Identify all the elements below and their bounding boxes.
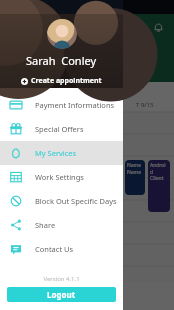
button[interactable]: Work Settings (0, 165, 123, 189)
staticText: S 9/13 (20, 101, 38, 109)
button[interactable]: My Services (0, 141, 123, 165)
staticText: Version 4.1.1 (0, 275, 123, 283)
staticText: Contact Us (35, 244, 74, 254)
staticText: Name Name (127, 162, 142, 175)
button[interactable]: Create appointment (15, 74, 108, 88)
button[interactable]: Profile photo (47, 19, 77, 49)
staticText: Logout (47, 289, 76, 300)
button[interactable]: Name Name (125, 160, 145, 195)
button[interactable]: Contact Us (0, 237, 123, 261)
button[interactable]: Special Offers (0, 117, 123, 141)
button[interactable]: Statistics (118, 17, 138, 37)
staticText: Your clients (10, 43, 66, 57)
button[interactable]: Invite (105, 286, 121, 306)
button[interactable]: Block Out Specific Days (0, 189, 123, 213)
staticText: Invite (105, 298, 121, 306)
staticText: Special Offers (35, 124, 84, 134)
staticText: Create appointment (31, 76, 102, 86)
button[interactable]: Payment Informations (0, 93, 123, 117)
staticText: Share (35, 220, 56, 230)
staticText: Android Client (150, 162, 168, 181)
staticText: My Services (35, 148, 77, 158)
staticText: T 9/15 (136, 101, 154, 109)
staticText: Block Out Specific Days (35, 196, 117, 206)
staticText: Payment Informations (35, 100, 115, 110)
staticText: Tomorrow (0) (65, 67, 109, 77)
staticText: Day view (8, 85, 42, 96)
button[interactable]: Notifications (148, 17, 168, 37)
button[interactable]: Logout (7, 287, 116, 302)
staticText: Work Settings (35, 172, 84, 182)
staticText: M 9/14 (77, 101, 97, 109)
button[interactable]: Tomorrow (0) (40, 64, 134, 79)
button[interactable]: Share (0, 213, 123, 237)
button[interactable]: Android Client (148, 160, 170, 212)
staticText: Sarah Conley (26, 53, 97, 68)
